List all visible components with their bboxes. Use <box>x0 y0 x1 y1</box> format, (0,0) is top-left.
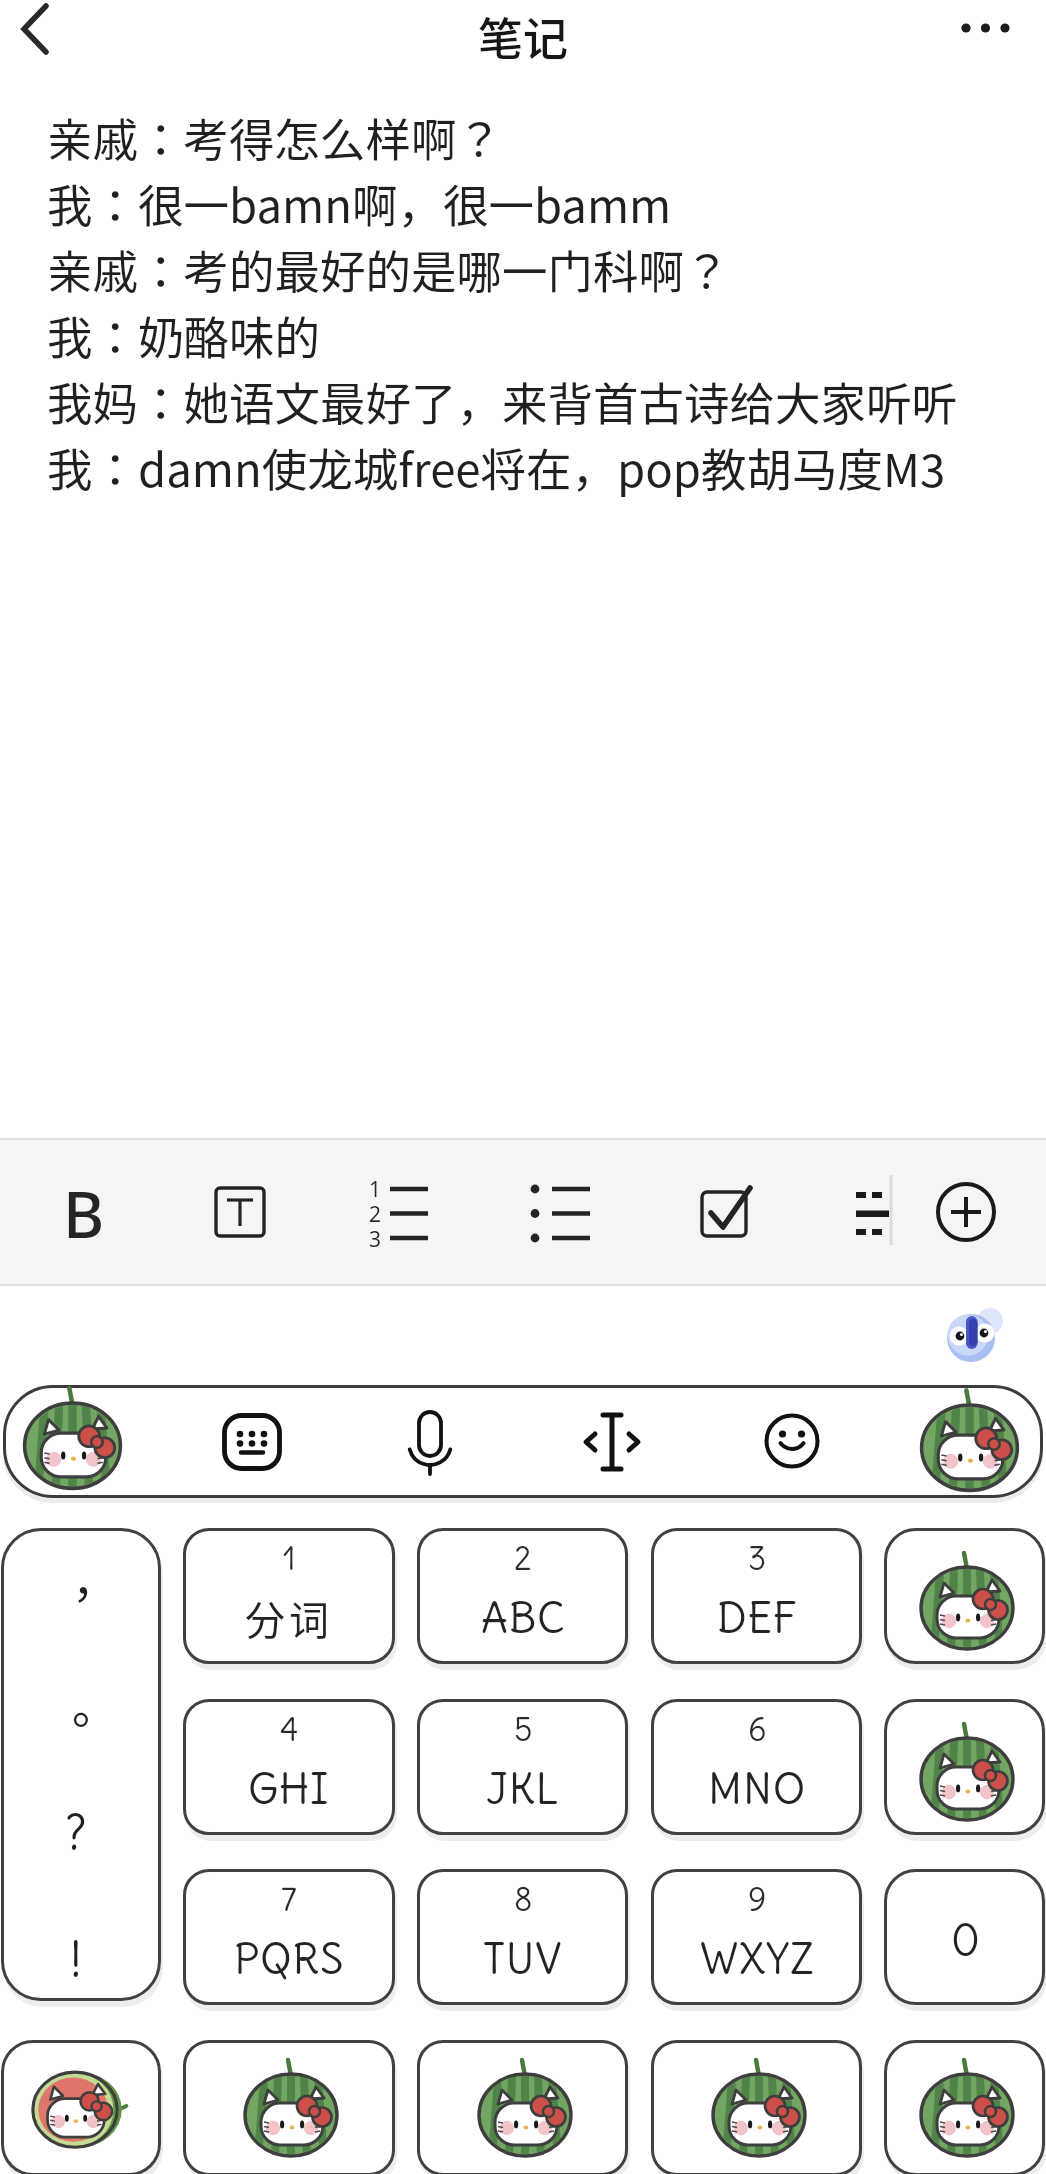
button[interactable] <box>651 2040 862 2174</box>
staticText: PQRS <box>234 1933 345 1986</box>
button[interactable] <box>920 1397 1016 1493</box>
button[interactable] <box>183 1869 395 2005</box>
staticText: 0 <box>951 1913 980 1968</box>
staticText: 4 <box>280 1709 299 1749</box>
button[interactable] <box>222 1413 282 1473</box>
button[interactable] <box>183 1699 395 1835</box>
staticText: 9 <box>748 1879 767 1919</box>
staticText: 笔记 <box>478 4 569 60</box>
button[interactable] <box>651 1869 862 2005</box>
button[interactable] <box>417 1528 628 1664</box>
button[interactable] <box>950 17 1022 41</box>
staticText: 。 <box>72 1670 118 1737</box>
staticText: GHI <box>248 1763 330 1816</box>
staticText: 7 <box>281 1879 297 1919</box>
button[interactable] <box>417 2040 628 2174</box>
staticText: 分词 <box>245 1589 333 1647</box>
staticText: 1 <box>283 1538 296 1578</box>
staticText: ， <box>72 1544 118 1611</box>
button[interactable] <box>214 1186 266 1238</box>
button[interactable] <box>1 2040 161 2174</box>
staticText: JKL <box>486 1763 560 1816</box>
staticText: DEF <box>717 1592 798 1645</box>
button[interactable] <box>183 1528 395 1664</box>
button[interactable] <box>18 2 52 58</box>
button[interactable] <box>884 1869 1045 2005</box>
button[interactable] <box>884 1699 1045 1835</box>
button[interactable] <box>884 2040 1045 2174</box>
button[interactable] <box>417 1869 628 2005</box>
button[interactable] <box>934 1180 998 1244</box>
staticText: 亲戚：考得怎么样啊？ 我：很一bamn啊，很一bamm 亲戚：考的最好的是哪一门… <box>47 104 957 500</box>
button[interactable] <box>651 1528 862 1664</box>
button[interactable] <box>698 1184 756 1242</box>
staticText: 3 <box>748 1538 767 1578</box>
staticText: 2 <box>514 1538 532 1578</box>
button[interactable] <box>528 1178 598 1246</box>
staticText: WXYZ <box>700 1933 815 1986</box>
button[interactable]: B <box>44 1171 124 1253</box>
staticText: B <box>63 1171 105 1253</box>
button[interactable] <box>884 1528 1045 1664</box>
button[interactable] <box>1 1528 161 2001</box>
staticText: 6 <box>748 1709 767 1749</box>
button[interactable] <box>578 1408 646 1476</box>
staticText: ABC <box>481 1592 566 1645</box>
button[interactable] <box>850 1170 898 1260</box>
staticText: TUV <box>483 1933 563 1986</box>
staticText: MNO <box>708 1763 807 1816</box>
button[interactable] <box>417 1699 628 1835</box>
button[interactable] <box>25 1395 121 1491</box>
button[interactable] <box>183 2040 395 2174</box>
staticText: ! <box>70 1930 82 1990</box>
staticText: 5 <box>514 1709 533 1749</box>
button[interactable] <box>406 1408 454 1478</box>
staticText: 1 2 3 <box>369 1175 382 1253</box>
button[interactable] <box>764 1413 820 1469</box>
button[interactable] <box>366 1178 436 1246</box>
button[interactable] <box>651 1699 862 1835</box>
staticText: 8 <box>514 1879 533 1919</box>
staticText: ? <box>65 1803 87 1863</box>
